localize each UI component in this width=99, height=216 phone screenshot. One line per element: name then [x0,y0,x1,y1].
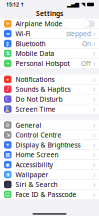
staticText: › [93,179,95,190]
staticText: Do Not Disturb [15,95,62,104]
button[interactable]: ❀ [0,170,99,179]
staticText: ☺ [5,191,11,197]
button[interactable]: ⇅ [0,49,99,58]
staticText: Notifications [15,75,54,84]
staticText: Bluetooth [15,39,45,48]
staticText: › [93,149,95,160]
staticText: ⇲ [6,132,10,138]
staticText: › [93,130,95,140]
button[interactable]: • [0,75,99,84]
button[interactable]: ♪ [0,84,99,94]
staticText: On [82,39,91,48]
staticText: ◥ [79,1,87,8]
staticText: stepped [66,29,91,38]
staticText: › [93,189,95,200]
button[interactable]: ▦ [0,150,99,159]
staticText: Siri & Search [15,180,57,189]
button[interactable]: ☾ [0,94,99,104]
staticText: Wi-Fi [15,29,30,38]
staticText: Settings [36,9,63,18]
staticText: ◌ [6,181,9,188]
button[interactable]: ⇲ [0,130,99,140]
staticText: › [93,120,95,130]
button[interactable]: ᛒ [0,39,99,48]
staticText: › [93,159,95,170]
staticText: › [93,38,95,49]
staticText: Control Centre [15,130,61,139]
staticText: Off [81,59,91,68]
staticText: ⌁ [6,60,9,66]
staticText: ⌛ [4,106,11,112]
staticText: Sounds & Haptics [15,85,70,94]
staticText: ᛒ [6,40,9,47]
staticText: ♪ [6,86,9,92]
button[interactable]: ≈ [0,29,99,38]
staticText: Face ID & Passcode [15,190,76,199]
staticText: ✈ [6,21,10,27]
staticText: › [93,94,95,104]
staticText: • [7,76,9,83]
staticText: ☾ [5,96,10,102]
staticText: General [15,121,41,129]
staticText: ▂▄▆ [67,1,79,8]
staticText: Mobile Data [15,49,54,58]
button[interactable]: ◉ [0,160,99,169]
button[interactable]: ⌁ [0,59,99,68]
staticText: › [93,28,95,39]
staticText: ▦ [5,152,10,158]
staticText: › [93,58,95,69]
staticText: Home Screen [15,150,58,159]
staticText: ❀ [6,171,10,178]
staticText: ◉ [5,162,10,168]
staticText: › [93,74,95,85]
staticText: › [93,104,95,114]
staticText: ⚙ [5,122,10,128]
staticText: › [93,48,95,59]
staticText: Display & Brightness [15,140,80,149]
staticText: › [93,169,95,180]
staticText: › [93,139,95,150]
staticText: Wallpaper [15,170,48,179]
staticText: Accessibility [15,160,52,169]
button[interactable]: ◌ [0,180,99,189]
button[interactable]: ☺ [0,190,99,199]
staticText: › [93,84,95,94]
button[interactable]: ☀ [0,140,99,150]
staticText: Screen Time [15,105,55,113]
button[interactable]: ✈ [0,19,99,28]
staticText: Personal Hotspot [15,59,69,68]
staticText: ☀ [5,142,10,148]
button[interactable]: ⚙ [0,120,99,130]
button[interactable]: ⌛ [0,104,99,114]
staticText: 15:12 ↑ [6,1,24,8]
staticText: Airplane Mode [15,19,62,28]
staticText: ⇅ [6,50,10,56]
staticText: ≈ [6,31,10,37]
